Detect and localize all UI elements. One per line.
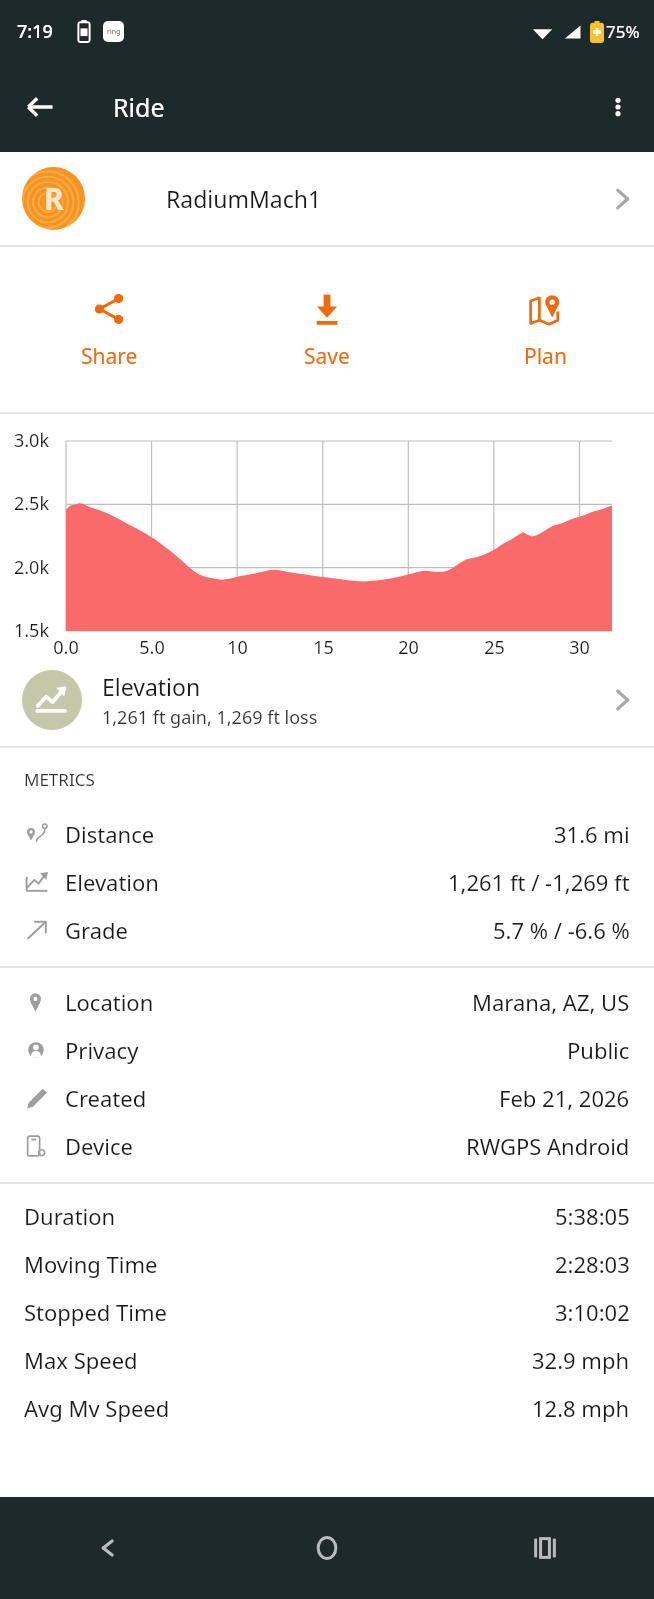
staticText: Ride xyxy=(113,90,165,124)
button[interactable]: Back xyxy=(0,1497,218,1599)
staticText: Public xyxy=(567,1035,630,1065)
staticText: Created xyxy=(65,1083,147,1113)
staticText: 20 xyxy=(398,635,419,660)
button[interactable]: Created xyxy=(0,1074,654,1122)
staticText: 1.5k xyxy=(14,618,50,643)
staticText: 5:38:05 xyxy=(555,1201,630,1231)
staticText: 75% xyxy=(606,20,640,43)
staticText: Stopped Time xyxy=(24,1297,167,1327)
staticText: 5.0 xyxy=(139,635,165,660)
button[interactable]: Duration xyxy=(0,1192,654,1240)
button[interactable]: Max Speed xyxy=(0,1336,654,1384)
staticText: Device xyxy=(65,1131,133,1161)
staticText: Elevation xyxy=(65,867,159,897)
staticText: 12.8 mph xyxy=(532,1393,630,1423)
button[interactable]: Grade xyxy=(0,906,654,954)
staticText: 0.0 xyxy=(53,635,79,660)
staticText: Elevation xyxy=(102,671,201,702)
button[interactable]: Elevation xyxy=(0,858,654,906)
staticText: Save xyxy=(304,342,350,371)
button[interactable]: Recent apps xyxy=(436,1497,654,1599)
staticText: Moving Time xyxy=(24,1249,158,1279)
staticText: RWGPS Android xyxy=(466,1131,630,1161)
staticText: 15 xyxy=(313,635,334,660)
button[interactable]: Device xyxy=(0,1122,654,1170)
staticText: 1,261 ft gain, 1,269 ft loss xyxy=(102,705,318,730)
button[interactable]: Avg Mv Speed xyxy=(0,1384,654,1432)
button[interactable]: Distance xyxy=(0,810,654,858)
staticText: R xyxy=(44,178,64,219)
button[interactable]: More options xyxy=(590,79,646,135)
staticText: 7:19 xyxy=(17,19,53,44)
staticText: Plan xyxy=(524,342,567,371)
staticText: Avg Mv Speed xyxy=(24,1393,170,1423)
button[interactable]: Plan xyxy=(436,247,654,412)
button[interactable]: Back xyxy=(12,79,68,135)
button[interactable]: Home xyxy=(218,1497,436,1599)
staticText: 25 xyxy=(484,635,505,660)
button[interactable]: Privacy xyxy=(0,1026,654,1074)
staticText: Distance xyxy=(65,819,155,849)
staticText: 3.0k xyxy=(14,428,50,453)
staticText: 2.5k xyxy=(14,491,50,516)
staticText: 3:10:02 xyxy=(555,1297,630,1327)
staticText: Duration xyxy=(24,1201,116,1231)
button[interactable]: R xyxy=(0,152,654,245)
staticText: RadiumMach1 xyxy=(166,183,610,214)
staticText: Share xyxy=(81,342,138,371)
staticText: Feb 21, 2026 xyxy=(499,1083,630,1113)
staticText: Location xyxy=(65,987,154,1017)
staticText: ring xyxy=(107,27,121,37)
staticText: Max Speed xyxy=(24,1345,138,1375)
button[interactable]: Location xyxy=(0,978,654,1026)
staticText: 2:28:03 xyxy=(555,1249,630,1279)
staticText: 5.7 % / -6.6 % xyxy=(493,915,630,945)
staticText: 32.9 mph xyxy=(532,1345,630,1375)
staticText: 31.6 mi xyxy=(554,819,630,849)
staticText: Privacy xyxy=(65,1035,139,1065)
staticText: METRICS xyxy=(24,768,95,791)
staticText: 2.0k xyxy=(14,555,50,580)
staticText: 30 xyxy=(569,635,590,660)
staticText: 10 xyxy=(227,635,248,660)
button[interactable]: Save xyxy=(218,247,436,412)
button[interactable]: Elevation xyxy=(0,654,654,746)
button[interactable]: Share xyxy=(0,247,218,412)
staticText: 1,261 ft / -1,269 ft xyxy=(448,867,630,897)
staticText: Marana, AZ, US xyxy=(472,987,630,1017)
staticText: Grade xyxy=(65,915,128,945)
button[interactable]: Moving Time xyxy=(0,1240,654,1288)
button[interactable]: Stopped Time xyxy=(0,1288,654,1336)
